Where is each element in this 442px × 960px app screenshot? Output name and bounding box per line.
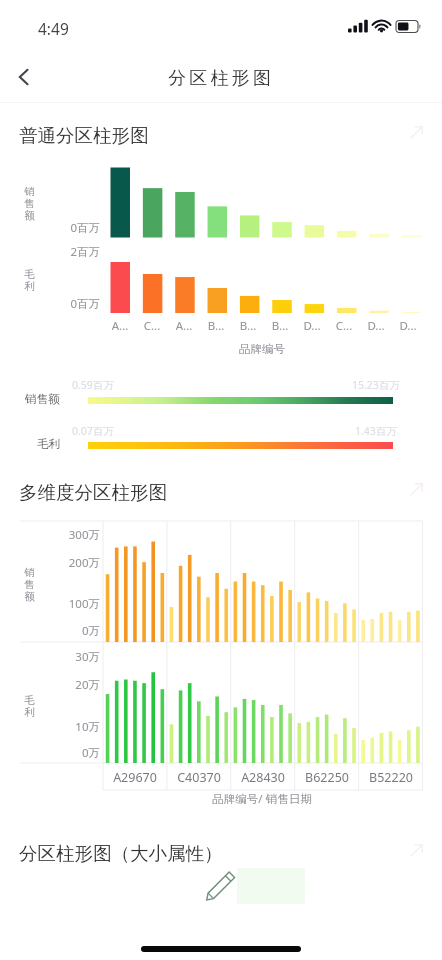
staticText: 0万 — [40, 623, 100, 639]
staticText: D... — [392, 318, 424, 334]
staticText: 15.23百万 — [352, 378, 400, 392]
staticText: 品牌编号/ 销售日期 — [202, 791, 322, 807]
staticText: 品牌编号 — [222, 342, 302, 356]
staticText: B62250 — [295, 769, 359, 786]
staticText: 300万 — [40, 527, 100, 543]
staticText: 200万 — [40, 555, 100, 571]
staticText: C40370 — [167, 769, 231, 786]
staticText: 毛利 — [37, 437, 60, 451]
staticText: 多维度分区柱形图 — [19, 481, 167, 504]
staticText: 2百万 — [40, 244, 100, 260]
button[interactable]: Expand — [404, 838, 428, 862]
staticText: B... — [200, 318, 232, 334]
staticText: 0.07百万 — [72, 424, 114, 438]
button[interactable]: Expand — [404, 120, 428, 144]
staticText: 毛 利 — [23, 268, 36, 293]
staticText: 普通分区柱形图 — [19, 124, 149, 147]
staticText: 10万 — [40, 719, 100, 735]
staticText: A... — [104, 318, 136, 334]
staticText: D... — [360, 318, 392, 334]
staticText: 销 售 额 — [23, 566, 36, 603]
staticText: B52220 — [359, 769, 423, 786]
staticText: 100万 — [40, 596, 100, 612]
staticText: 20万 — [40, 677, 100, 693]
staticText: 0百万 — [40, 296, 100, 312]
staticText: 分区柱形图 — [0, 67, 442, 90]
staticText: 毛 利 — [23, 694, 36, 719]
staticText: 30万 — [40, 649, 100, 665]
staticText: 0百万 — [40, 220, 100, 236]
staticText: B... — [232, 318, 264, 334]
staticText: B... — [264, 318, 296, 334]
staticText: A28430 — [231, 769, 295, 786]
staticText: D... — [296, 318, 328, 334]
button[interactable]: Back — [6, 59, 42, 95]
staticText: 分区柱形图（大小属性） — [19, 842, 223, 865]
staticText: C... — [136, 318, 168, 334]
staticText: 4:49 — [38, 18, 69, 39]
staticText: 销售额 — [25, 392, 60, 406]
button[interactable]: Expand — [404, 477, 428, 501]
staticText: A29670 — [103, 769, 167, 786]
staticText: 0万 — [40, 745, 100, 761]
staticText: 销 售 额 — [23, 185, 36, 222]
staticText: 1.43百万 — [355, 424, 397, 438]
staticText: C... — [328, 318, 360, 334]
staticText: A... — [168, 318, 200, 334]
staticText: 0.59百万 — [72, 378, 114, 392]
